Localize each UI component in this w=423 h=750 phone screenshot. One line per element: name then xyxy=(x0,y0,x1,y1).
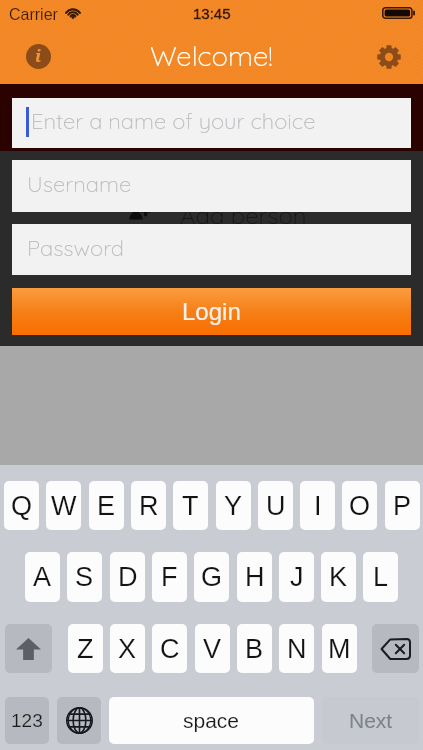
button[interactable]: Password xyxy=(12,224,411,275)
staticText: i xyxy=(35,44,42,67)
button[interactable]: 123 xyxy=(5,697,49,744)
staticText: Enter a name of your choice xyxy=(31,107,316,135)
staticText: Welcome! xyxy=(150,38,273,72)
button[interactable]: F xyxy=(152,552,187,602)
button[interactable]: U xyxy=(258,481,293,530)
staticText: F xyxy=(161,562,178,592)
staticText: D xyxy=(118,562,138,592)
button[interactable]: X xyxy=(110,624,145,673)
staticText: O xyxy=(349,491,371,521)
button[interactable]: Username xyxy=(12,160,411,212)
button[interactable]: K xyxy=(321,552,356,602)
button[interactable]: Z xyxy=(68,624,103,673)
button[interactable]: Next xyxy=(322,697,419,744)
button[interactable]: Info xyxy=(26,44,51,69)
button[interactable]: P xyxy=(385,481,420,530)
staticText: V xyxy=(203,634,222,664)
button[interactable]: Settings xyxy=(371,39,407,75)
staticText: T xyxy=(182,491,199,521)
staticText: J xyxy=(290,562,304,592)
button[interactable]: H xyxy=(237,552,272,602)
button[interactable]: Q xyxy=(4,481,39,530)
staticText: P xyxy=(393,491,412,521)
staticText: B xyxy=(245,634,264,664)
staticText: Carrier xyxy=(9,6,58,24)
button[interactable]: N xyxy=(279,624,314,673)
staticText: N xyxy=(287,634,307,664)
staticText: Q xyxy=(11,491,33,521)
button[interactable]: Switch keyboard xyxy=(57,697,101,744)
staticText: X xyxy=(118,634,137,664)
button[interactable]: G xyxy=(194,552,229,602)
staticText: S xyxy=(75,562,94,592)
staticText: W xyxy=(51,491,77,521)
button[interactable]: T xyxy=(173,481,208,530)
staticText: M xyxy=(328,634,351,664)
staticText: Add person xyxy=(180,200,307,230)
button[interactable]: space xyxy=(109,697,314,744)
staticText: space xyxy=(183,709,240,732)
button[interactable]: S xyxy=(67,552,102,602)
staticText: Next xyxy=(349,709,393,732)
button[interactable]: O xyxy=(342,481,377,530)
staticText: Password xyxy=(27,234,124,262)
staticText: U xyxy=(266,491,286,521)
staticText: C xyxy=(160,634,180,664)
button[interactable]: Login xyxy=(12,288,411,335)
button[interactable]: C xyxy=(152,624,187,673)
staticText: Z xyxy=(77,634,94,664)
staticText: A xyxy=(33,562,52,592)
staticText: G xyxy=(201,562,223,592)
button[interactable]: Enter a name of your choice xyxy=(12,98,411,148)
staticText: 13:45 xyxy=(193,5,231,22)
button[interactable]: R xyxy=(131,481,166,530)
button[interactable]: W xyxy=(46,481,81,530)
staticText: L xyxy=(373,562,389,592)
staticText: R xyxy=(139,491,159,521)
button[interactable]: Shift xyxy=(5,624,52,673)
button[interactable]: B xyxy=(237,624,272,673)
button[interactable]: A xyxy=(25,552,60,602)
staticText: Y xyxy=(224,491,243,521)
staticText: Login xyxy=(182,298,241,325)
button[interactable]: Backspace xyxy=(372,624,419,673)
button[interactable]: L xyxy=(363,552,398,602)
button[interactable]: I xyxy=(300,481,335,530)
button[interactable]: M xyxy=(322,624,357,673)
button[interactable]: V xyxy=(195,624,230,673)
button[interactable]: E xyxy=(89,481,124,530)
staticText: K xyxy=(329,562,348,592)
button[interactable]: J xyxy=(279,552,314,602)
staticText: 123 xyxy=(11,710,43,731)
button[interactable]: Y xyxy=(216,481,251,530)
button[interactable]: D xyxy=(110,552,145,602)
staticText: E xyxy=(97,491,116,521)
staticText: Username xyxy=(27,170,132,198)
staticText: H xyxy=(245,562,265,592)
staticText: I xyxy=(314,491,322,521)
